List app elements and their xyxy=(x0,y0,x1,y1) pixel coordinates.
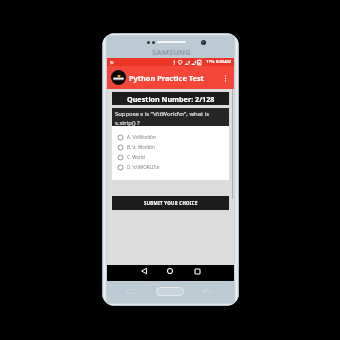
button[interactable]: B. \t, World\n xyxy=(117,142,229,152)
staticText: SUBMIT YOUR CHOICE xyxy=(144,200,198,206)
button[interactable]: More options xyxy=(220,73,230,83)
button[interactable]: C. World xyxy=(117,152,229,162)
staticText: Suppose s is "\t\tWorld\n", what is s.st… xyxy=(115,110,209,126)
button[interactable]: Home xyxy=(164,265,176,277)
staticText: B. \t, World\n xyxy=(127,144,155,150)
staticText: C. World xyxy=(127,154,145,160)
button[interactable]: A. \t\tWorld\n xyxy=(117,132,229,142)
staticText: 8:05AM xyxy=(216,59,232,65)
button[interactable]: SUBMIT YOUR CHOICE xyxy=(112,196,229,210)
staticText: SAMSUNG xyxy=(152,47,191,57)
staticText: 17% xyxy=(206,59,215,65)
staticText: ⚑ xyxy=(109,59,115,66)
button[interactable]: Back xyxy=(138,265,150,277)
button[interactable]: Recent apps xyxy=(191,265,203,277)
staticText: Python Practice Test xyxy=(129,73,204,83)
staticText: A. \t\tWorld\n xyxy=(127,134,156,140)
staticText: D. \t\tWORLD\n xyxy=(127,164,160,170)
staticText: Question Number: 2/128 xyxy=(127,94,215,104)
button[interactable]: D. \t\tWORLD\n xyxy=(117,162,229,172)
